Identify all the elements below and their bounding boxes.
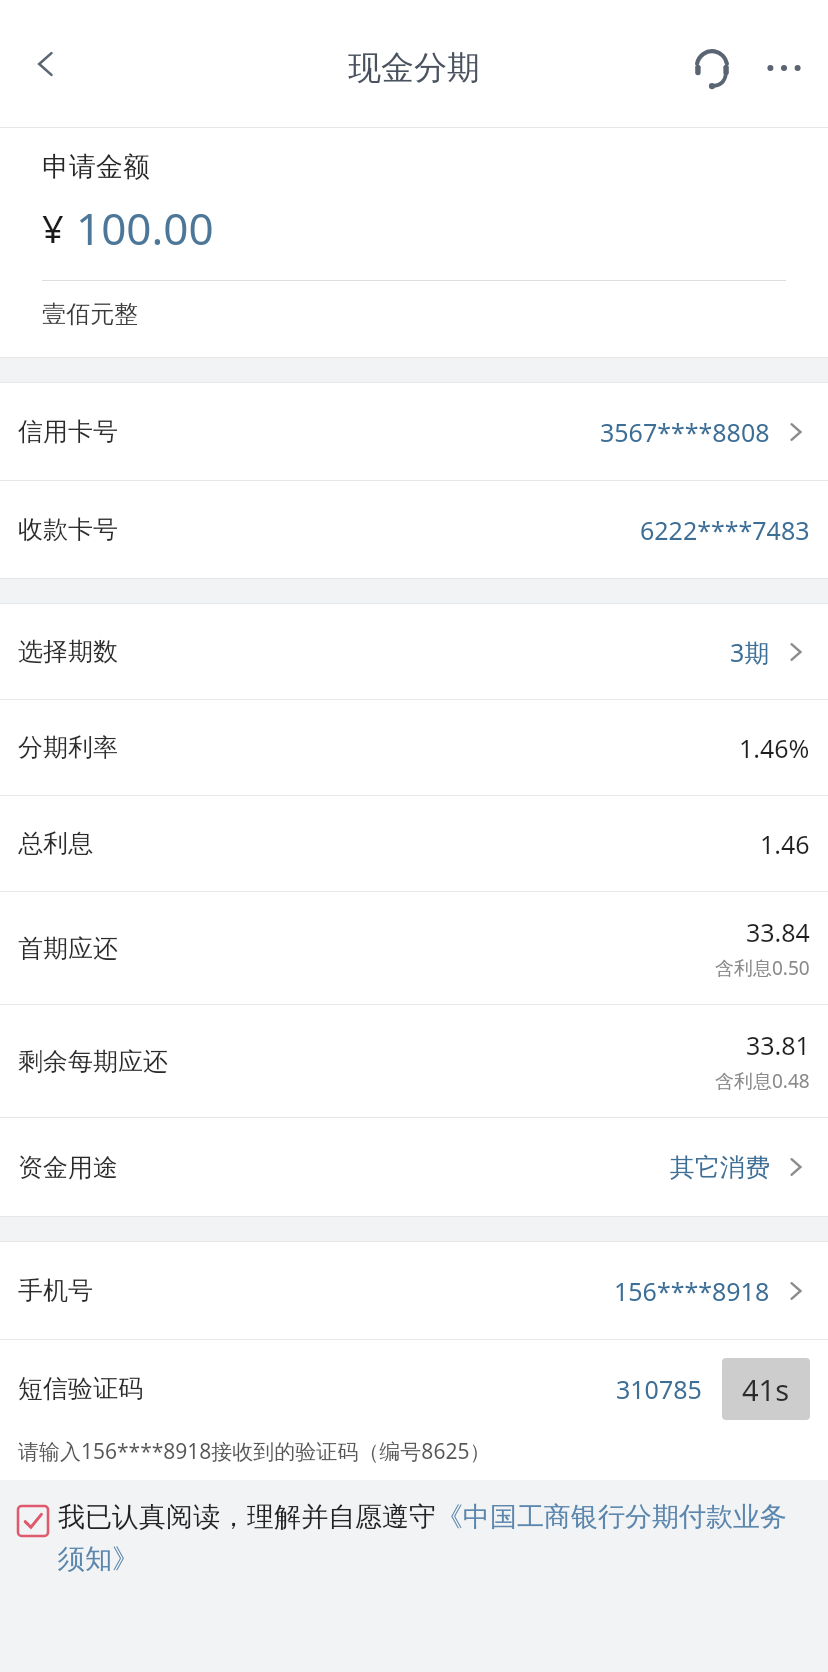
staticText: 剩余每期应还: [18, 1046, 168, 1077]
button[interactable]: Customer service: [676, 32, 748, 104]
staticText: 我已认真阅读，理解并自愿遵守《中国工商银行分期付款业务须知》: [58, 1500, 800, 1576]
staticText: 现金分期: [348, 47, 480, 89]
staticText: 33.84: [746, 915, 810, 949]
staticText: 含利息0.48: [715, 1068, 810, 1094]
button[interactable]: 资金用途: [0, 1118, 828, 1216]
staticText: 1.46%: [739, 731, 810, 765]
button[interactable]: 选择期数: [0, 604, 828, 699]
staticText: 壹佰元整: [42, 299, 138, 329]
button[interactable]: Back: [14, 32, 78, 96]
staticText: 33.81: [746, 1028, 810, 1062]
button[interactable]: 信用卡号: [0, 383, 828, 480]
staticText: 手机号: [18, 1275, 93, 1306]
staticText: 156****8918: [614, 1274, 770, 1308]
staticText: 短信验证码: [18, 1373, 143, 1404]
button[interactable]: 41s: [722, 1358, 810, 1420]
button[interactable]: 我已认真阅读，理解并自愿遵守《中国工商银行分期付款业务须知》: [0, 1480, 828, 1594]
staticText: 3567****8808: [600, 415, 770, 449]
staticText: 收款卡号: [18, 514, 118, 545]
staticText: 100.00: [76, 198, 214, 258]
button[interactable]: 手机号: [0, 1242, 828, 1339]
staticText: 选择期数: [18, 636, 118, 667]
staticText: 6222****7483: [640, 513, 810, 547]
staticText: 信用卡号: [18, 416, 118, 447]
staticText: 含利息0.50: [715, 955, 810, 981]
staticText: 总利息: [18, 828, 93, 859]
button[interactable]: More options: [748, 32, 820, 104]
staticText: 1.46: [760, 827, 810, 861]
staticText: ¥: [42, 202, 64, 254]
staticText: 申请金额: [42, 150, 150, 184]
staticText: 首期应还: [18, 933, 118, 964]
staticText: 其它消费: [670, 1152, 770, 1183]
staticText: 资金用途: [18, 1152, 118, 1183]
staticText: 请输入156****8918接收到的验证码（编号8625）: [18, 1437, 491, 1466]
staticText: 分期利率: [18, 732, 118, 763]
staticText: 41s: [742, 1370, 790, 1409]
staticText: 310785: [616, 1372, 702, 1406]
staticText: 3期: [730, 635, 770, 669]
